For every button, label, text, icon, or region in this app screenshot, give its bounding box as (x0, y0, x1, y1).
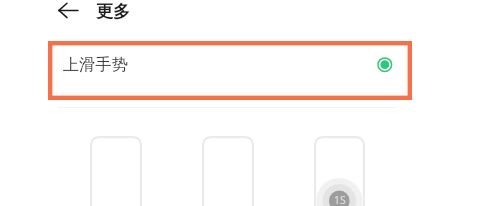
button[interactable]: Gesture option 3 (314, 136, 365, 206)
button[interactable]: Back (52, 0, 86, 22)
staticText: 1S (330, 193, 350, 206)
button[interactable]: Gesture option 1 (90, 136, 142, 206)
button[interactable]: 上滑手势 (48, 41, 412, 100)
staticText: 更多 (96, 1, 130, 22)
button[interactable]: Gesture option 2 (202, 136, 254, 206)
staticText: 上滑手势 (63, 54, 128, 74)
button[interactable]: Selected (368, 49, 402, 83)
